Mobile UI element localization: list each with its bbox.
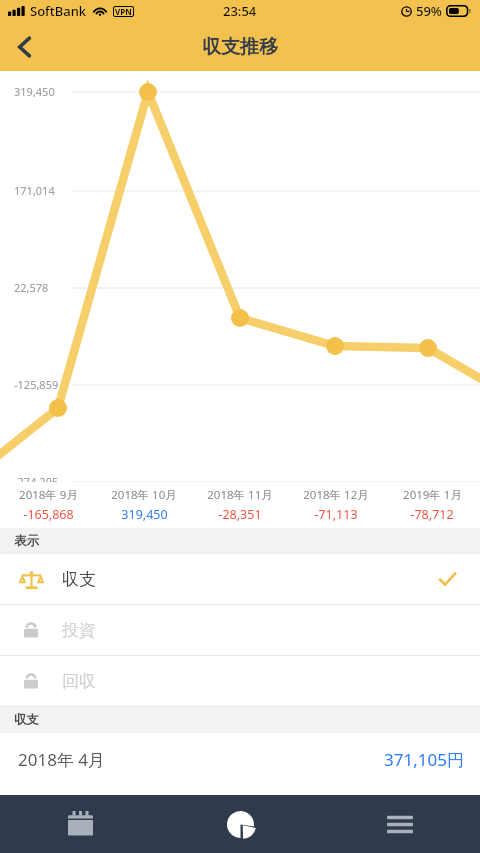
button[interactable]: 回収 — [0, 656, 480, 706]
staticText: 収支 — [62, 569, 96, 590]
staticText: 収支 — [14, 712, 39, 728]
button[interactable]: 2018年 4月 — [0, 733, 480, 785]
button[interactable]: 収支 — [0, 554, 480, 604]
staticText: 2018年 11月 — [207, 487, 273, 503]
staticText: 表示 — [14, 533, 39, 549]
staticText: 2019年 1月 — [403, 487, 462, 503]
button[interactable]: Charts — [160, 795, 320, 853]
staticText: SoftBank — [30, 2, 87, 20]
staticText: 2018年 9月 — [19, 487, 78, 503]
staticText: 371,105円 — [384, 748, 464, 771]
staticText: 22,578 — [14, 280, 49, 295]
staticText: 2018年 10月 — [111, 487, 177, 503]
staticText: -274,295 — [14, 474, 59, 489]
staticText: -28,351 — [218, 506, 262, 523]
staticText: -71,113 — [314, 506, 358, 523]
staticText: 2018年 4月 — [18, 748, 106, 771]
button[interactable]: Menu — [320, 795, 480, 853]
staticText: 投資 — [62, 620, 96, 641]
staticText: 319,450 — [121, 506, 168, 523]
staticText: 2018年 12月 — [303, 487, 369, 503]
staticText: -125,859 — [14, 377, 59, 392]
staticText: 23:54 — [223, 2, 257, 20]
staticText: 収支推移 — [202, 35, 278, 59]
staticText: 59% — [416, 2, 442, 20]
button[interactable]: Calendar — [0, 795, 160, 853]
staticText: -78,712 — [410, 506, 454, 523]
staticText: -165,868 — [23, 506, 74, 523]
button[interactable]: 投資 — [0, 605, 480, 655]
staticText: VPN — [115, 6, 132, 17]
staticText: 319,450 — [14, 84, 55, 99]
button[interactable]: Back — [0, 22, 49, 71]
staticText: 171,014 — [14, 183, 55, 198]
staticText: 回収 — [62, 671, 96, 692]
